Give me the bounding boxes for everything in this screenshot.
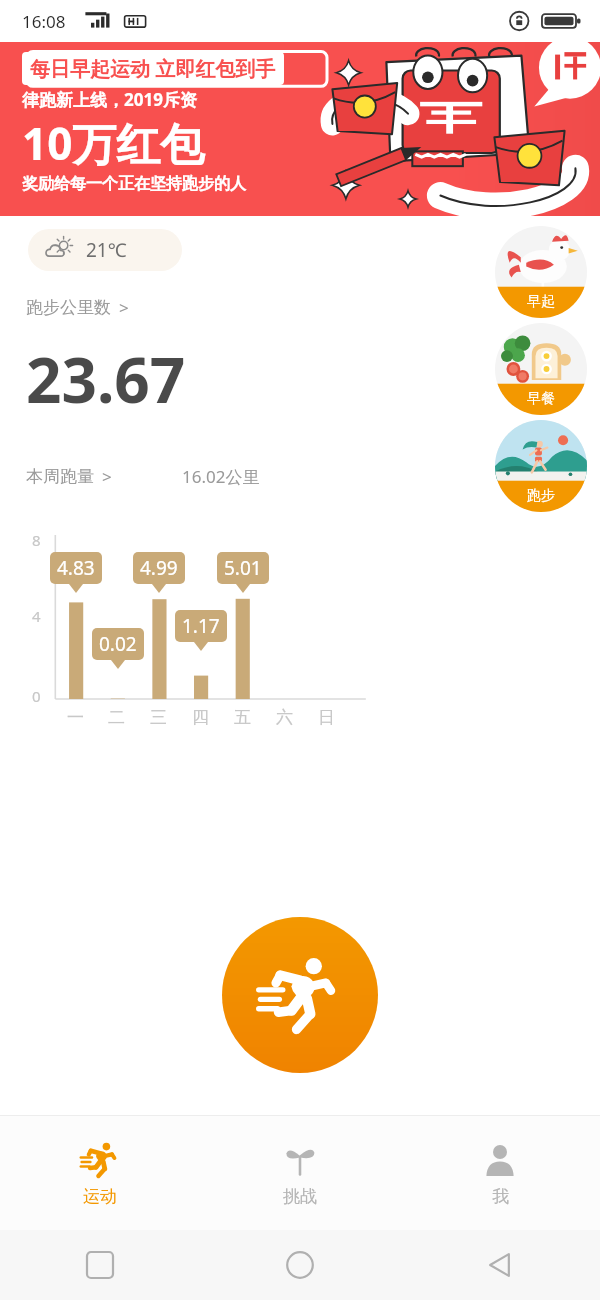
button[interactable]: 跑步公里数 [26, 296, 129, 319]
staticText: 五 [234, 707, 251, 728]
staticText: 跑步 [527, 487, 555, 505]
staticText: 律跑新上线，2019斥资 [22, 88, 197, 111]
button[interactable]: 运动 [0, 1116, 200, 1230]
staticText: 5.01 [224, 555, 262, 581]
staticText: 23.67 [26, 337, 186, 421]
staticText: 三 [150, 707, 167, 728]
staticText: 1.17 [182, 613, 220, 639]
button[interactable]: Home [276, 1241, 324, 1289]
staticText: 10万红包 [22, 113, 205, 173]
staticText: 21℃ [86, 237, 127, 263]
staticText: 16:08 [22, 10, 66, 33]
button[interactable]: 21℃ [28, 229, 182, 271]
staticText: 挑战 [283, 1186, 317, 1207]
staticText: 0 [32, 686, 41, 706]
staticText: 运动 [83, 1186, 117, 1207]
staticText: 二 [108, 707, 125, 728]
staticText: 8 [32, 530, 41, 550]
button[interactable]: 挑战 [200, 1116, 400, 1230]
staticText: 4.83 [57, 555, 95, 581]
button[interactable]: Recents [76, 1241, 124, 1289]
staticText: 一 [67, 707, 84, 728]
button[interactable]: 开始跑步 [222, 917, 378, 1073]
button[interactable]: 活动横幅 [0, 42, 600, 216]
staticText: 日 [318, 707, 335, 728]
staticText: 四 [192, 707, 209, 728]
button[interactable]: 跑步 [495, 420, 587, 512]
button[interactable]: 我 [400, 1116, 600, 1230]
staticText: > [102, 465, 112, 488]
staticText: 我 [492, 1186, 509, 1207]
staticText: 本周跑量 [26, 466, 94, 487]
staticText: 六 [276, 707, 293, 728]
staticText: 16.02公里 [182, 465, 260, 488]
staticText: 4.99 [140, 555, 178, 581]
button[interactable]: Back [476, 1241, 524, 1289]
button[interactable]: 早起 [495, 226, 587, 318]
staticText: 早餐 [527, 390, 555, 408]
staticText: 0.02 [99, 631, 137, 657]
staticText: 早起 [527, 293, 555, 311]
staticText: 跑步公里数 [26, 297, 111, 318]
button[interactable]: 本周跑量 [0, 465, 600, 488]
button[interactable]: 早餐 [495, 323, 587, 415]
staticText: 每日早起运动 立即红包到手 [30, 55, 276, 82]
staticText: > [119, 296, 129, 319]
staticText: 4 [32, 606, 41, 626]
staticText: 奖励给每一个正在坚持跑步的人 [22, 174, 246, 194]
